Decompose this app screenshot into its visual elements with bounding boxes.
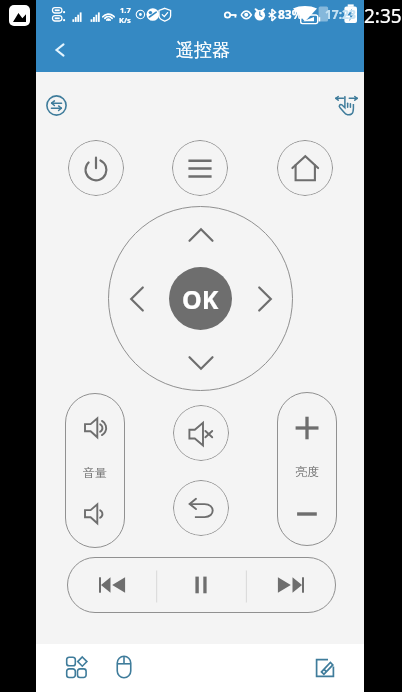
button[interactable]: Play pause — [156, 557, 246, 613]
button[interactable]: Home — [277, 140, 333, 196]
button[interactable]: Volume up — [65, 405, 125, 451]
button[interactable]: Power — [68, 140, 124, 196]
button[interactable]: Switch device — [38, 87, 74, 123]
button[interactable]: Back — [37, 27, 83, 73]
staticText: 2:35 — [364, 3, 402, 25]
button[interactable]: Brightness up — [277, 405, 337, 451]
button[interactable]: Mute — [173, 405, 229, 461]
button[interactable]: Touchpad — [328, 87, 364, 123]
button[interactable]: Apps — [55, 645, 99, 689]
button[interactable]: Next — [246, 557, 336, 613]
button[interactable]: Down — [179, 341, 223, 385]
button[interactable]: Volume down — [65, 491, 125, 537]
button[interactable]: Right — [243, 277, 287, 321]
button[interactable]: Menu — [172, 140, 228, 196]
button[interactable]: Up — [179, 213, 223, 257]
button[interactable]: OK — [169, 267, 232, 330]
staticText: K/s — [119, 15, 131, 25]
button[interactable]: Back — [173, 480, 229, 536]
staticText: 83% — [278, 6, 303, 22]
staticText: 遥控器 — [176, 39, 230, 62]
button[interactable]: Left — [115, 277, 159, 321]
staticText: 1.7 — [120, 5, 131, 15]
button[interactable]: Mouse — [102, 645, 146, 689]
staticText: 亮度 — [295, 464, 319, 479]
staticText: 17:23 — [325, 6, 356, 22]
button[interactable]: Brightness down — [277, 491, 337, 537]
button[interactable]: Edit — [303, 646, 347, 690]
staticText: 音量 — [83, 465, 107, 480]
staticText: OK — [182, 282, 219, 316]
button[interactable]: Previous — [67, 557, 156, 613]
